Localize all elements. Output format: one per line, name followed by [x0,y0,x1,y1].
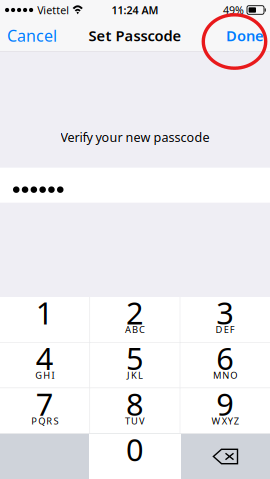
staticText: DEF [216,323,235,336]
staticText: Cancel [7,25,57,46]
button[interactable]: Cancel [0,18,64,53]
staticText: 7 [36,383,54,424]
button[interactable]: Delete [181,434,270,479]
button[interactable]: Done [218,19,270,52]
button[interactable]: 1 [0,297,90,342]
button[interactable]: 8 [90,388,180,433]
staticText: 5 [126,338,144,378]
staticText: 9 [216,383,234,424]
staticText: 4 [36,338,54,378]
staticText: Set Passcode [88,26,181,45]
button[interactable]: 4 [0,343,90,388]
staticText: 8 [126,383,144,424]
button[interactable]: 2 [90,297,180,342]
button[interactable]: 9 [180,388,270,433]
staticText: Viettel [37,3,69,17]
staticText: ABC [125,323,145,336]
staticText: 2 [126,292,144,333]
staticText: 11:24 AM [111,3,158,17]
button[interactable]: 6 [180,343,270,388]
staticText: TUV [125,415,145,427]
staticText: Verify your new passcode [60,128,209,146]
staticText: JKL [127,369,143,381]
staticText: MNO [213,369,237,381]
staticText: PQRS [31,415,58,427]
staticText: 1 [36,292,54,333]
button[interactable]: 0 [89,434,181,479]
staticText: 49% [223,3,244,17]
button[interactable]: 3 [180,297,270,342]
staticText: 6 [216,338,234,378]
button[interactable]: 7 [0,388,90,433]
staticText: 3 [216,292,234,333]
staticText: 0 [126,429,144,470]
staticText: Done [226,26,264,45]
staticText: GHI [35,369,54,381]
staticText [44,323,46,336]
staticText: WXYZ [212,415,239,427]
button[interactable]: 5 [90,343,180,388]
